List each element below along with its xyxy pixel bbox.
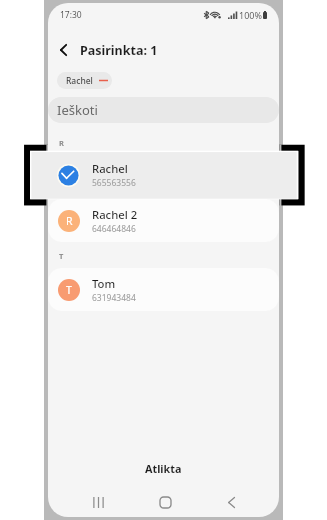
staticText: R: [59, 138, 64, 148]
button[interactable]: Home: [152, 489, 178, 515]
staticText: Pasirinkta: 1: [80, 42, 158, 59]
staticText: 100%: [239, 9, 262, 21]
staticText: 565563556: [92, 177, 136, 189]
staticText: Rachel: [92, 161, 128, 176]
staticText: 631943484: [92, 292, 136, 304]
staticText: R: [66, 214, 73, 228]
button[interactable]: Ieškoti: [48, 97, 279, 123]
staticText: 17:30: [60, 9, 82, 21]
button[interactable]: Back: [50, 37, 76, 63]
button[interactable]: Atlikta: [48, 451, 279, 485]
staticText: Rachel: [66, 75, 93, 87]
staticText: Tom: [92, 276, 116, 291]
staticText: Atlikta: [145, 461, 182, 476]
button[interactable]: Recent apps: [85, 489, 111, 515]
staticText: 646464846: [92, 223, 136, 235]
button[interactable]: Back: [218, 489, 244, 515]
staticText: Ieškoti: [57, 101, 98, 119]
staticText: Rachel 2: [92, 207, 138, 222]
staticText: Rachel: [92, 161, 128, 176]
button[interactable]: Rachel: [57, 72, 112, 89]
staticText: T: [59, 251, 64, 261]
staticText: 565563556: [92, 177, 136, 189]
button[interactable]: R: [48, 199, 279, 242]
staticText: T: [66, 283, 72, 297]
button[interactable]: T: [48, 268, 279, 311]
button[interactable]: Rachel: [48, 151, 279, 199]
